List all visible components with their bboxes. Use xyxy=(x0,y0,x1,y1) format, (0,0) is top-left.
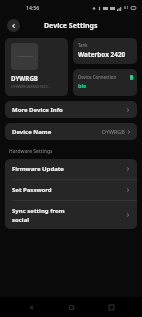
staticText: ble xyxy=(78,82,87,89)
staticText: 14:56 xyxy=(26,4,40,11)
button[interactable]: Device Connection xyxy=(73,69,137,96)
button[interactable]: Back xyxy=(7,19,20,32)
button[interactable]: Tank xyxy=(73,38,137,64)
staticText: social xyxy=(12,216,30,224)
staticText: DYWRGB xyxy=(102,128,125,135)
staticText: DYWWRGB86607823... xyxy=(11,84,51,89)
button[interactable]: More Device Info xyxy=(5,101,137,118)
button[interactable]: Home xyxy=(62,298,80,316)
staticText: DYWRGB xyxy=(11,74,38,82)
staticText: Device Name xyxy=(12,128,52,136)
staticText: Tank xyxy=(78,42,88,48)
staticText: 61 xyxy=(124,5,129,11)
staticText: Device Connection xyxy=(78,74,117,80)
staticText: Hardware Settings xyxy=(9,148,53,155)
button[interactable]: Sync setting from xyxy=(5,201,137,229)
button[interactable]: DYWRGB xyxy=(5,38,68,96)
button[interactable]: Set Password xyxy=(5,180,137,200)
button[interactable]: Firmware Update xyxy=(5,159,137,179)
staticText: Device Settings xyxy=(44,21,98,31)
staticText: Firmware Update xyxy=(12,165,64,173)
button[interactable]: Back xyxy=(22,298,40,316)
staticText: More Device Info xyxy=(12,106,63,114)
staticText: Set Password xyxy=(12,186,52,194)
button[interactable]: Recent apps xyxy=(102,298,120,316)
staticText: Sync setting from xyxy=(12,207,65,215)
button[interactable]: Device Name xyxy=(5,123,137,140)
staticText: Waterbox 2420 xyxy=(78,50,126,59)
